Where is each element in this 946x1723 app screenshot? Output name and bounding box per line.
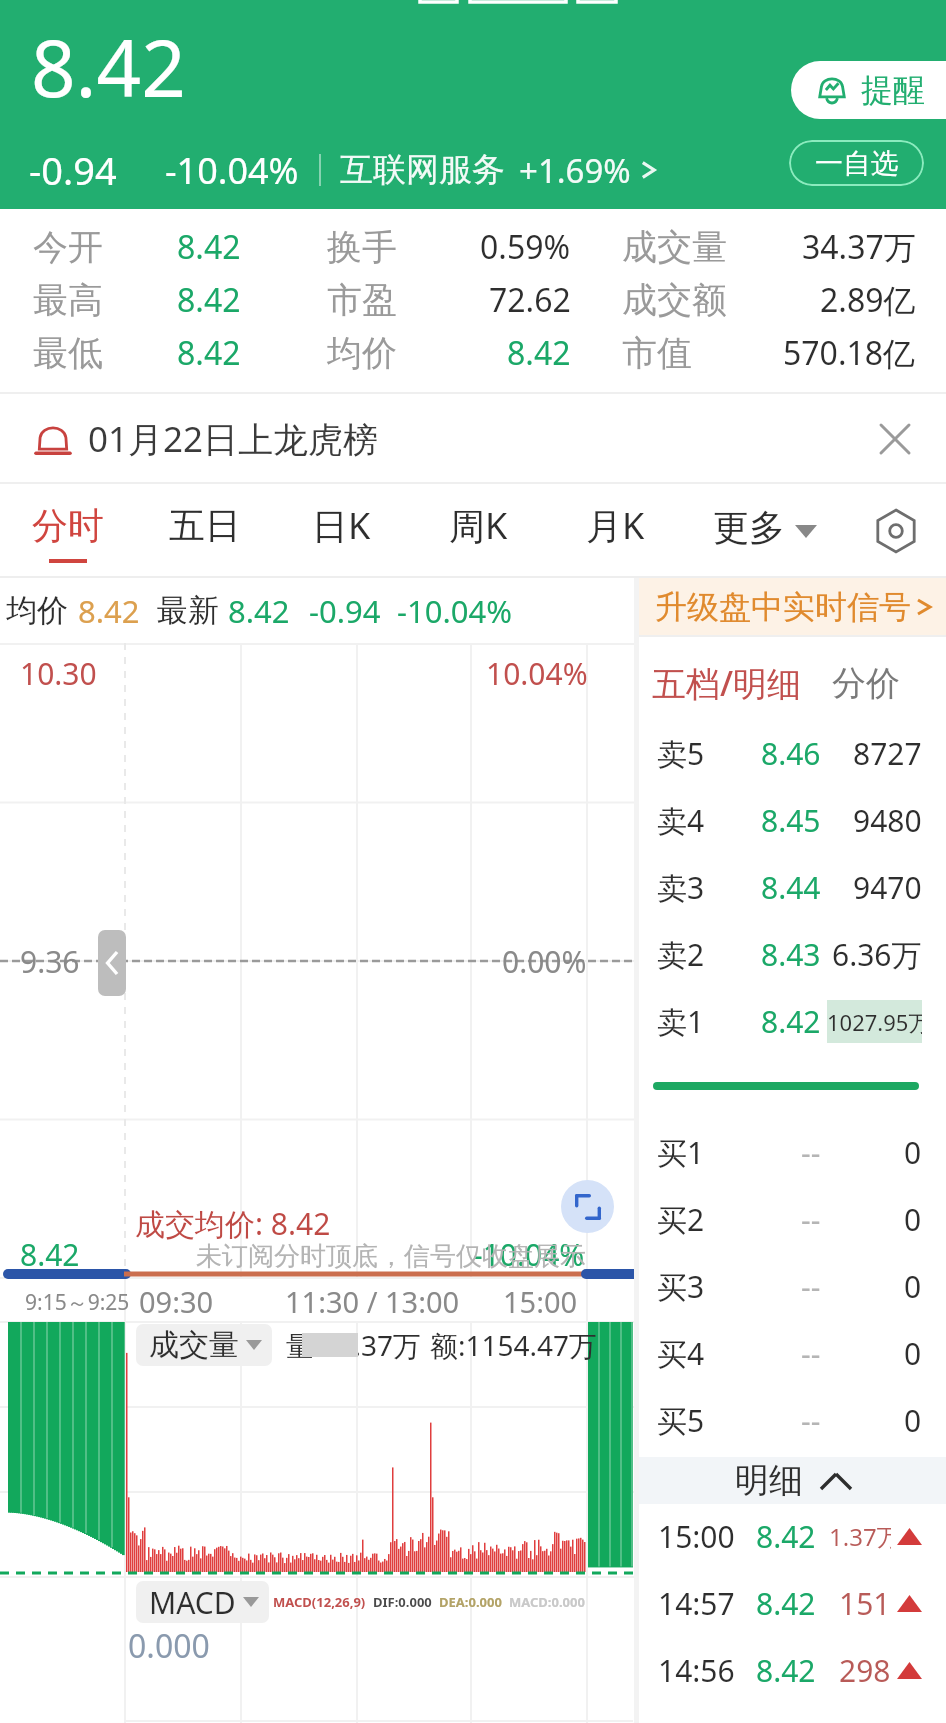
button[interactable]: 更多 [684, 484, 846, 578]
staticText: MACD [149, 1582, 236, 1623]
button[interactable]: 成交量 [136, 1324, 272, 1366]
staticText: 提醒 [861, 70, 925, 110]
staticText: 8.42 [507, 331, 571, 375]
staticText: MACD(12,26,9) [273, 1593, 366, 1611]
button[interactable]: 一自选 [789, 140, 924, 186]
staticText: 9470 [853, 867, 922, 908]
staticText: 均价 [6, 591, 68, 630]
button[interactable]: 分价 [832, 662, 900, 705]
staticText: 8.45 [761, 800, 821, 841]
staticText: -- [801, 1333, 821, 1374]
staticText: 周K [449, 501, 508, 550]
button[interactable]: 买4 [639, 1320, 946, 1387]
staticText: 8.42 [756, 1583, 816, 1624]
staticText: 日K [312, 501, 371, 550]
staticText: 五档/明细 [652, 660, 802, 706]
staticText: 15:00 [503, 1282, 578, 1321]
staticText: 均价 [327, 331, 397, 375]
staticText: -- [801, 1400, 821, 1441]
button[interactable]: 卖4 [639, 787, 946, 854]
staticText: 买4 [657, 1333, 705, 1374]
staticText: 卖1 [657, 1001, 705, 1042]
staticText: 分价 [832, 662, 900, 705]
staticText: 298 [839, 1650, 891, 1691]
staticText: -10.04% [165, 146, 299, 195]
button[interactable]: 14:56 [639, 1637, 946, 1704]
button[interactable]: 提醒 [791, 61, 946, 119]
button[interactable]: 买1 [639, 1119, 946, 1186]
button[interactable]: 周K [410, 484, 547, 578]
staticText: -- [801, 1199, 821, 1240]
button[interactable]: 14:57 [639, 1570, 946, 1637]
button[interactable]: 五日 [136, 484, 273, 578]
staticText: 11:30 / 13:00 [285, 1282, 460, 1321]
staticText: 8.42 [20, 1234, 80, 1275]
staticText: 8.42 [177, 225, 241, 269]
button[interactable]: 明细 [639, 1457, 946, 1504]
staticText: 最新 [157, 591, 219, 630]
staticText: 9480 [853, 800, 922, 841]
button[interactable]: 卖1 [639, 988, 946, 1055]
staticText: 8727 [853, 733, 922, 774]
staticText: 分时 [32, 503, 104, 548]
button[interactable]: 五档/明细 [652, 660, 802, 706]
staticText: 14:57 [658, 1583, 735, 1624]
staticText: 8.46 [761, 733, 821, 774]
button[interactable]: 15:00 [639, 1503, 946, 1570]
staticText: 9:15～9:25 [25, 1288, 130, 1317]
staticText: 8.42 [761, 1001, 821, 1042]
button[interactable]: Chart settings [846, 484, 946, 578]
staticText: 0 [904, 1266, 922, 1307]
staticText: 量:34.37万 [286, 1326, 422, 1364]
button[interactable]: Fullscreen [561, 1180, 614, 1233]
staticText: DEA:0.000 [439, 1593, 502, 1611]
button[interactable]: Close [858, 402, 932, 476]
staticText: 8.42 [31, 14, 186, 120]
staticText: 市值 [622, 331, 692, 375]
staticText: DIF:0.000 [373, 1593, 432, 1611]
staticText: 更多 [713, 505, 785, 550]
staticText: 买5 [657, 1400, 705, 1441]
staticText: -0.94 [29, 144, 117, 196]
staticText: 五日 [169, 503, 241, 548]
staticText: 151 [839, 1583, 891, 1624]
button[interactable]: 买3 [639, 1253, 946, 1320]
staticText: 成交均价: 8.42 [135, 1203, 331, 1244]
staticText: 额:1154.47万 [430, 1326, 598, 1364]
staticText: -10.04% [473, 1234, 585, 1275]
staticText: 8.42 [756, 1650, 816, 1691]
staticText: 最低 [33, 331, 103, 375]
staticText: 8.42 [78, 590, 140, 632]
button[interactable]: 买5 [639, 1387, 946, 1454]
staticText: 买2 [657, 1199, 705, 1240]
staticText: 成交量 [149, 1326, 239, 1364]
staticText: 9.36 [20, 941, 80, 982]
staticText: 明细 [735, 1459, 803, 1502]
button[interactable]: 卖2 [639, 921, 946, 988]
staticText: -- [801, 1266, 821, 1307]
staticText: 8.42 [177, 278, 241, 322]
staticText: 8.42 [177, 331, 241, 375]
button[interactable]: MACD [136, 1581, 269, 1623]
staticText: 34.37万 [802, 225, 916, 269]
staticText: -- [801, 1132, 821, 1173]
staticText: 成交额 [622, 278, 727, 322]
staticText: 570.18亿 [783, 331, 916, 375]
staticText: MACD:0.000 [509, 1593, 585, 1611]
button[interactable]: 日K [273, 484, 410, 578]
staticText: 1027.95万 [827, 1007, 922, 1037]
staticText: 卖2 [657, 934, 705, 975]
button[interactable]: 买2 [639, 1186, 946, 1253]
button[interactable]: 月K [547, 484, 684, 578]
button[interactable]: 分时 [0, 484, 136, 578]
button[interactable]: Previous day [98, 930, 126, 996]
staticText: 0 [904, 1400, 922, 1441]
staticText: 01月22日上龙虎榜 [88, 415, 379, 463]
button[interactable]: 01月22日上龙虎榜 [0, 394, 946, 484]
staticText: 0 [904, 1333, 922, 1374]
button[interactable]: 升级盘中实时信号 [639, 578, 946, 635]
staticText: 0 [904, 1199, 922, 1240]
staticText: 72.62 [489, 278, 571, 322]
button[interactable]: 卖5 [639, 720, 946, 787]
button[interactable]: 卖3 [639, 854, 946, 921]
